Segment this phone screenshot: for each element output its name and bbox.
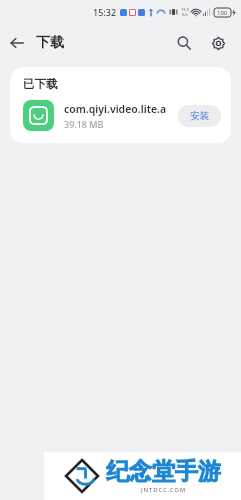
- button[interactable]: Back: [0, 26, 34, 60]
- button[interactable]: Search: [169, 28, 199, 58]
- button[interactable]: 安装: [178, 105, 221, 127]
- staticText: 100: [217, 9, 228, 17]
- staticText: JNTDCC.COM: [141, 486, 186, 494]
- staticText: 安装: [190, 110, 209, 122]
- staticText: 纪念堂手游: [106, 457, 221, 486]
- staticText: K/s: [182, 12, 188, 17]
- staticText: 15:32: [93, 6, 117, 18]
- button[interactable]: com.qiyi.video.lite.apk: [10, 91, 231, 143]
- staticText: com.qiyi.video.lite.apk: [64, 102, 172, 116]
- staticText: 下载: [36, 34, 64, 52]
- staticText: 39.18 MB: [64, 118, 104, 130]
- button[interactable]: Settings: [203, 28, 233, 58]
- staticText: 13.5: [181, 7, 189, 12]
- staticText: 已下载: [23, 77, 58, 91]
